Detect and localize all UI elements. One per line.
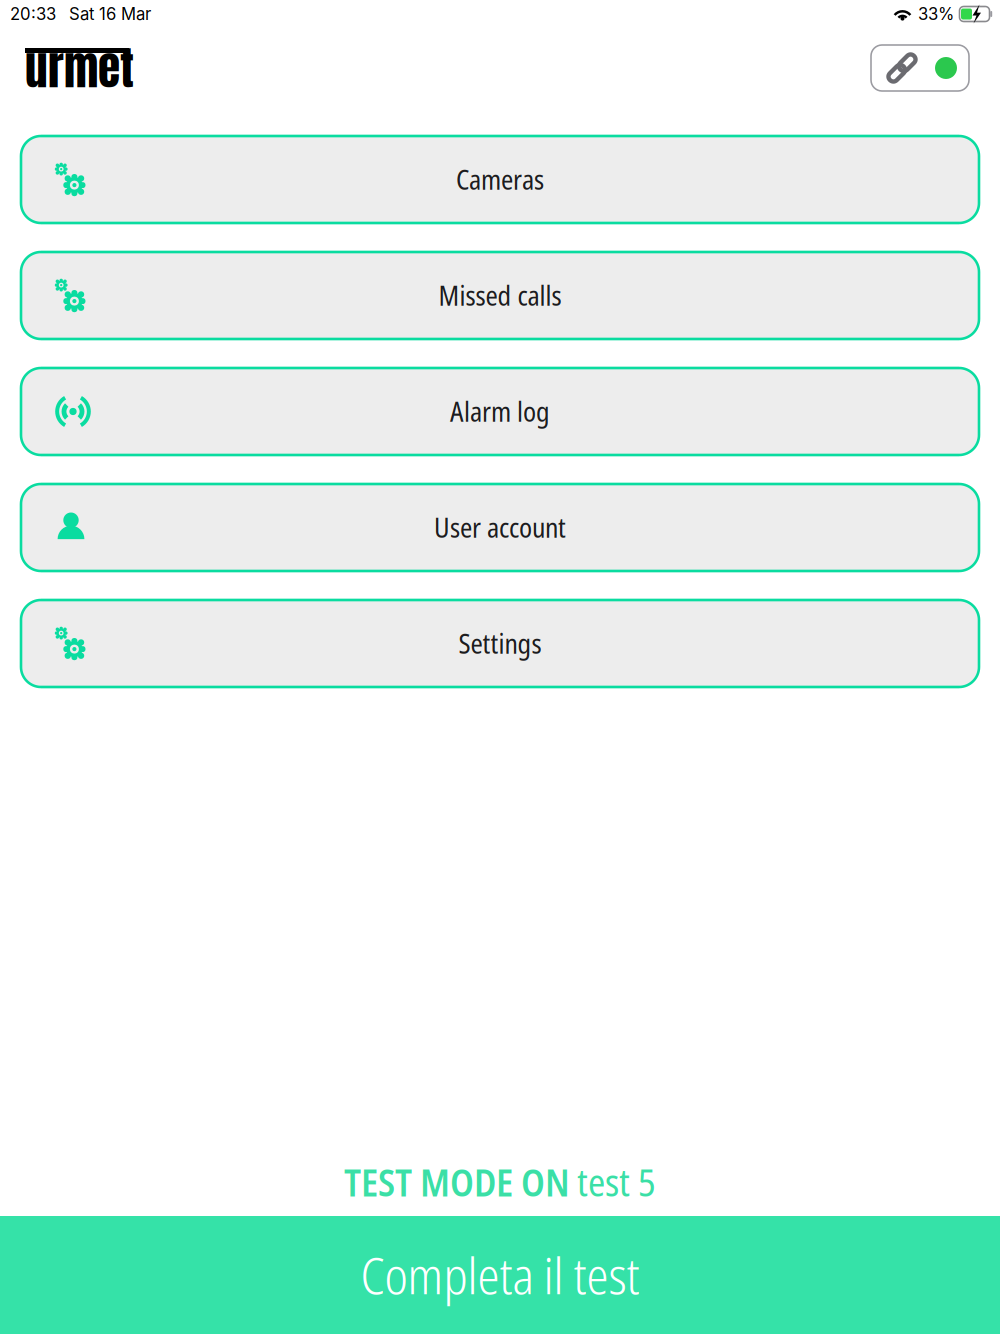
staticText: 33%: [918, 4, 954, 24]
button[interactable]: Cameras: [21, 136, 979, 223]
button[interactable]: User account: [21, 484, 979, 571]
staticText: Completa il test: [360, 1241, 639, 1309]
staticText: Missed calls: [438, 277, 561, 314]
staticText: urmet: [25, 34, 134, 102]
staticText: test 5: [577, 1157, 656, 1207]
staticText: Sat 16 Mar: [69, 4, 151, 24]
button[interactable]: Completa il test: [0, 1216, 1000, 1334]
button[interactable]: Alarm log: [21, 368, 979, 455]
button[interactable]: Missed calls: [21, 252, 979, 339]
button[interactable]: Connection status: [871, 45, 969, 91]
staticText: Settings: [458, 625, 541, 662]
staticText: TEST MODE ON: [344, 1157, 570, 1207]
staticText: Cameras: [456, 161, 544, 198]
staticText: Alarm log: [450, 393, 550, 430]
staticText: 20:33: [10, 4, 56, 24]
button[interactable]: Settings: [21, 600, 979, 687]
staticText: User account: [434, 509, 566, 546]
